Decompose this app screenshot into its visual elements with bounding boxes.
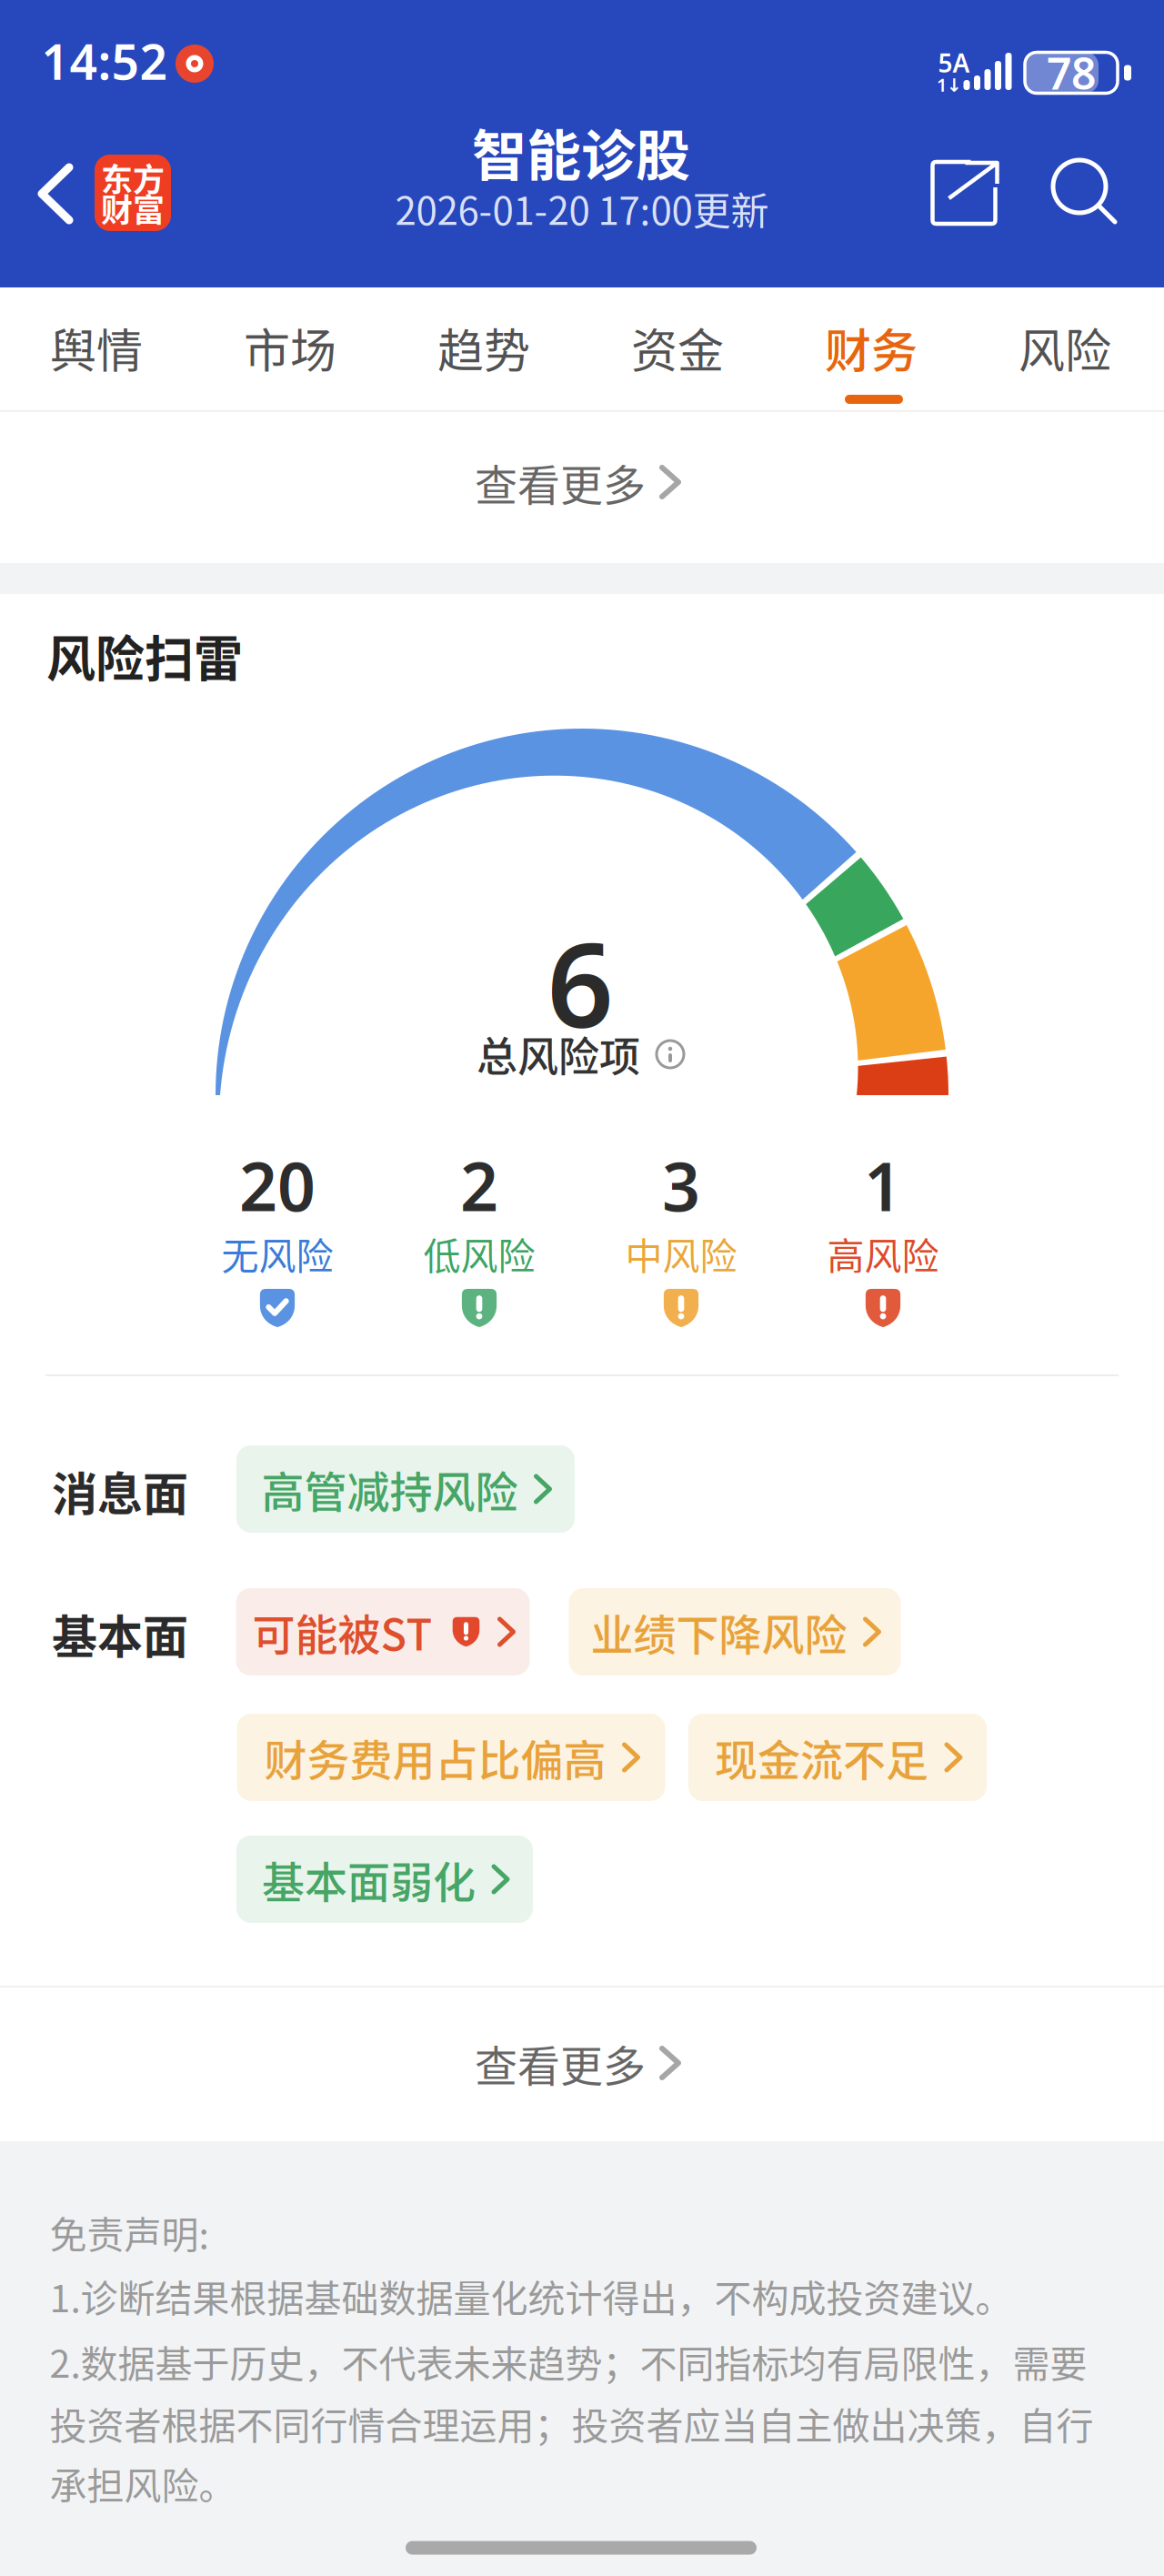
staticText: 5A: [938, 46, 970, 80]
staticText: 风险扫雷: [46, 620, 243, 691]
staticText: 78: [1047, 44, 1096, 102]
staticText: 高管减持风险: [261, 1458, 518, 1520]
button[interactable]: 基本面弱化: [236, 1836, 533, 1923]
button[interactable]: 资金: [596, 297, 759, 397]
staticText: 业绩下降风险: [591, 1601, 847, 1663]
staticText: 6: [547, 905, 613, 1060]
staticText: 查看更多: [475, 451, 646, 513]
staticText: 3: [662, 1141, 700, 1230]
button[interactable]: Info: [657, 1041, 684, 1068]
button[interactable]: 趋势: [402, 297, 566, 397]
staticText: 低风险: [423, 1226, 535, 1280]
staticText: 查看更多: [475, 2032, 646, 2094]
staticText: 1: [864, 1141, 902, 1230]
button[interactable]: Search: [1051, 158, 1117, 224]
button[interactable]: 舆情: [15, 297, 178, 397]
staticText: 风险: [1018, 314, 1111, 381]
staticText: 财务费用占比偏高: [264, 1726, 606, 1788]
button[interactable]: 东方财富: [95, 155, 171, 231]
staticText: 1↓: [937, 72, 962, 97]
staticText: 免责声明:: [50, 2205, 209, 2259]
staticText: 投资者根据不同行情合理运用；投资者应当自主做出决策，自行: [50, 2396, 1094, 2450]
button[interactable]: Share: [931, 160, 999, 226]
staticText: 20: [239, 1141, 316, 1230]
staticText: 无风险: [221, 1226, 333, 1280]
staticText: 承担风险。: [50, 2456, 236, 2510]
button[interactable]: 财务: [789, 297, 953, 397]
staticText: 1.诊断结果根据基础数据量化统计得出，不构成投资建议。: [50, 2269, 1013, 2323]
button[interactable]: 市场: [208, 297, 372, 397]
staticText: 舆情: [50, 314, 143, 381]
staticText: 消息面: [52, 1458, 188, 1524]
button[interactable]: 风险: [983, 297, 1147, 397]
button[interactable]: 查看更多: [395, 2013, 758, 2113]
button[interactable]: 业绩下降风险: [569, 1588, 901, 1675]
staticText: 总风险项: [477, 1025, 640, 1084]
button[interactable]: 可能被ST: [236, 1588, 530, 1675]
staticText: 现金流不足: [715, 1726, 928, 1788]
staticText: 资金: [631, 314, 724, 381]
staticText: 2: [460, 1141, 498, 1230]
staticText: 东方: [101, 154, 165, 201]
button[interactable]: 现金流不足: [688, 1714, 987, 1801]
button[interactable]: 查看更多: [395, 432, 758, 532]
staticText: 市场: [244, 314, 336, 381]
staticText: 智能诊股: [472, 112, 690, 191]
staticText: 趋势: [437, 314, 530, 381]
staticText: 2026-01-20 17:00更新: [395, 181, 769, 236]
staticText: 财务: [825, 314, 918, 381]
button[interactable]: Back: [24, 153, 87, 235]
staticText: 基本面: [52, 1601, 188, 1667]
staticText: 14:52: [41, 29, 168, 93]
button[interactable]: 财务费用占比偏高: [237, 1714, 665, 1801]
staticText: 高风险: [827, 1226, 939, 1280]
staticText: 2.数据基于历史，不代表未来趋势；不同指标均有局限性，需要: [50, 2334, 1087, 2388]
staticText: 可能被ST: [252, 1601, 432, 1663]
staticText: 基本面弱化: [262, 1848, 476, 1910]
staticText: 财富: [101, 185, 165, 231]
staticText: 中风险: [625, 1226, 737, 1280]
button[interactable]: 高管减持风险: [236, 1445, 575, 1533]
